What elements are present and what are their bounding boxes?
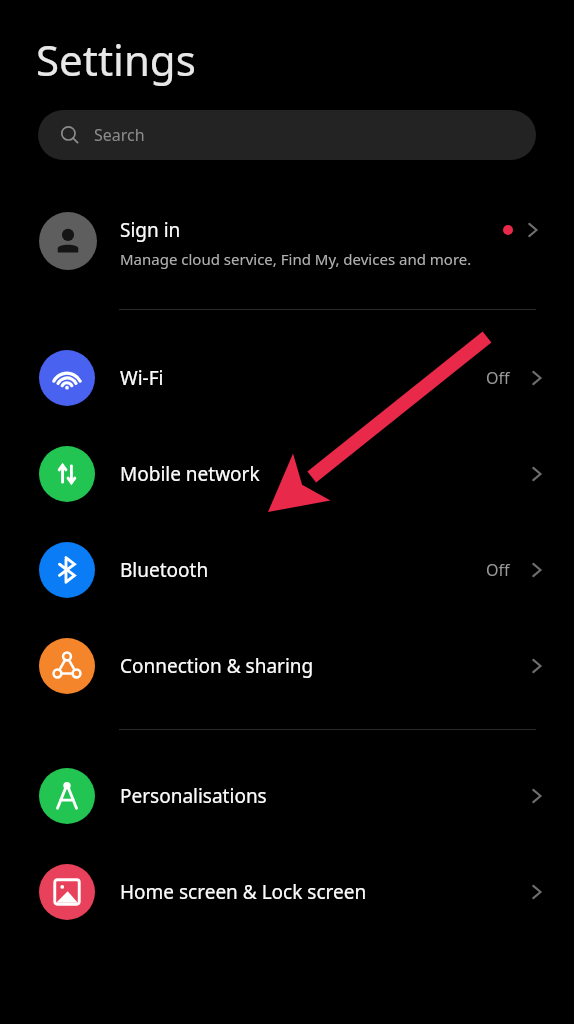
- staticText: Manage cloud service, Find My, devices a…: [120, 249, 472, 269]
- staticText: Mobile network: [120, 461, 518, 487]
- staticText: Off: [486, 367, 510, 389]
- staticText: Connection & sharing: [120, 653, 518, 679]
- button[interactable]: Bluetooth: [0, 522, 574, 618]
- button[interactable]: Mobile network: [0, 426, 574, 522]
- staticText: Home screen & Lock screen: [120, 879, 518, 905]
- button[interactable]: Search: [38, 110, 536, 160]
- button[interactable]: Sign in: [0, 193, 574, 309]
- button[interactable]: Personalisations: [0, 748, 574, 844]
- staticText: Sign in: [120, 217, 181, 243]
- button[interactable]: Home screen & Lock screen: [0, 844, 574, 940]
- button[interactable]: Connection & sharing: [0, 618, 574, 714]
- staticText: Bluetooth: [120, 557, 478, 583]
- button[interactable]: Wi-Fi: [0, 330, 574, 426]
- staticText: Settings: [36, 31, 196, 88]
- staticText: Wi-Fi: [120, 365, 478, 391]
- staticText: Off: [486, 559, 510, 581]
- staticText: Search: [94, 124, 145, 146]
- staticText: Personalisations: [120, 783, 518, 809]
